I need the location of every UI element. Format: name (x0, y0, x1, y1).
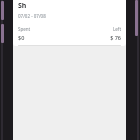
staticText: Sh (18, 1, 27, 11)
staticText: $ 76 (110, 34, 121, 41)
staticText: 07/02 - 07/08 (18, 13, 46, 19)
staticText: $0 (18, 34, 25, 41)
button[interactable]: Power (135, 0, 138, 36)
button[interactable]: Sh (13, 0, 126, 46)
button[interactable]: Volume up (1, 1, 4, 20)
staticText: Left (112, 26, 121, 32)
staticText: Spent (18, 26, 31, 32)
button[interactable]: Volume down (1, 24, 4, 43)
